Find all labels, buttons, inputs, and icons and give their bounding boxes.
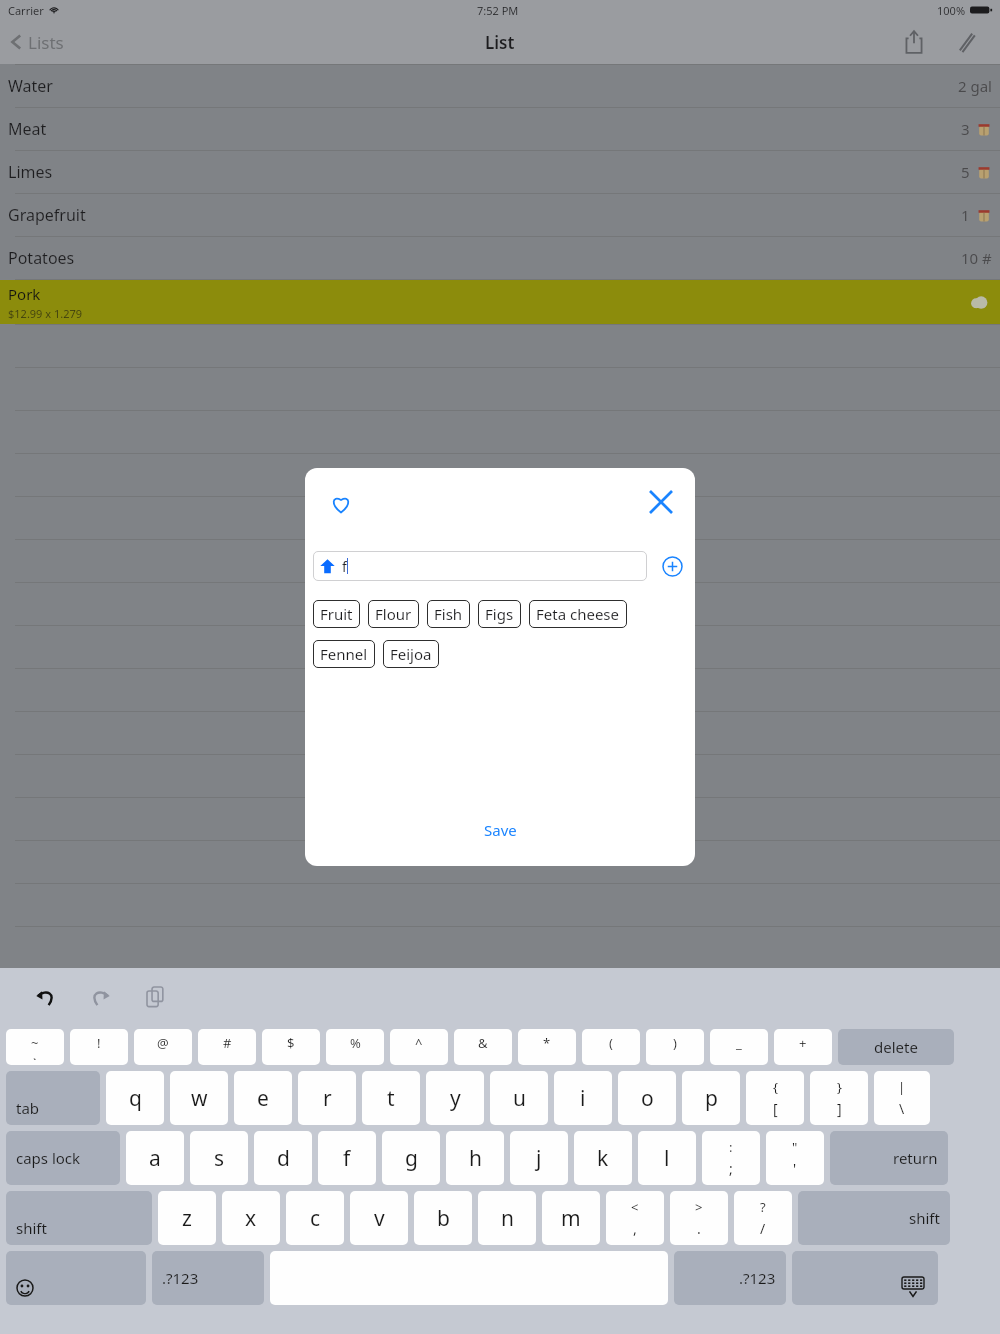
button[interactable]: Hide keyboard [792,1251,938,1305]
button[interactable]: Fish [434,600,463,628]
button[interactable]: f [320,551,647,581]
button[interactable]: ! [70,1029,128,1065]
button[interactable]: k [574,1131,632,1185]
button[interactable]: f [318,1131,376,1185]
button[interactable]: @ [134,1029,192,1065]
button[interactable]: Undo [24,975,68,1019]
button[interactable]: Edit [946,22,986,62]
button[interactable]: < [606,1191,664,1245]
button[interactable]: p [682,1071,740,1125]
staticText: r [323,1084,332,1113]
button[interactable]: w [170,1071,228,1125]
button[interactable]: r [298,1071,356,1125]
button[interactable]: y [426,1071,484,1125]
button[interactable]: n [478,1191,536,1245]
staticText: ^ [415,1034,423,1052]
button[interactable]: Feijoa [390,640,432,668]
button[interactable]: Lists [10,20,64,64]
button[interactable]: g [382,1131,440,1185]
button[interactable]: Close [639,480,683,524]
button[interactable]: & [454,1029,512,1065]
button[interactable]: Potatoes [8,237,992,279]
staticText: 2 gal [958,76,992,96]
button[interactable]: tab [6,1071,100,1125]
staticText: shift [16,1218,47,1238]
button[interactable]: Feta cheese [536,600,620,628]
button[interactable]: q [106,1071,164,1125]
button[interactable]: Fennel [320,640,368,668]
button[interactable]: shift [798,1191,950,1245]
button[interactable]: v [350,1191,408,1245]
staticText: h [469,1144,482,1173]
button[interactable]: h [446,1131,504,1185]
button[interactable]: ^ [390,1029,448,1065]
staticText: & [478,1034,488,1052]
button[interactable]: Water [8,65,992,107]
button[interactable]: Add [657,551,687,581]
button[interactable]: z [158,1191,216,1245]
button[interactable]: return [830,1131,948,1185]
button[interactable]: e [234,1071,292,1125]
button[interactable]: j [510,1131,568,1185]
button[interactable]: shift [6,1191,152,1245]
staticText: Fennel [320,644,368,664]
button[interactable]: c [286,1191,344,1245]
button[interactable]: Favorite [321,484,361,524]
button[interactable]: t [362,1071,420,1125]
button[interactable]: + [774,1029,832,1065]
button[interactable]: Paste [134,975,178,1019]
button[interactable]: i [554,1071,612,1125]
button[interactable]: .?123 [152,1251,264,1305]
button[interactable]: $ [262,1029,320,1065]
button[interactable]: b [414,1191,472,1245]
button[interactable]: s [190,1131,248,1185]
button[interactable]: Emoji [6,1251,146,1305]
button[interactable]: ( [582,1029,640,1065]
button[interactable]: l [638,1131,696,1185]
staticText: ! [97,1034,101,1052]
staticText: f [343,1144,351,1173]
button[interactable]: Limes [8,151,992,193]
staticText: b [437,1204,450,1233]
button[interactable]: ~ [6,1029,64,1065]
button[interactable]: Figs [485,600,514,628]
staticText: | [898,1078,906,1096]
button[interactable]: ? [734,1191,792,1245]
button[interactable]: " [766,1131,824,1185]
button[interactable]: u [490,1071,548,1125]
button[interactable]: | [874,1071,930,1125]
button[interactable]: .?123 [674,1251,786,1305]
button[interactable]: delete [838,1029,954,1065]
button[interactable]: Pork [0,280,1000,324]
button[interactable]: Grapefruit [8,194,992,236]
button[interactable]: Share [894,22,934,62]
button[interactable]: a [126,1131,184,1185]
button[interactable]: } [810,1071,868,1125]
button[interactable]: * [518,1029,576,1065]
button[interactable]: o [618,1071,676,1125]
staticText: Water [8,75,53,97]
staticText: t [387,1084,395,1113]
button[interactable]: Flour [375,600,412,628]
button[interactable]: > [670,1191,728,1245]
button[interactable]: # [198,1029,256,1065]
button[interactable]: ) [646,1029,704,1065]
button[interactable]: m [542,1191,600,1245]
button[interactable]: d [254,1131,312,1185]
button[interactable]: Meat [8,108,992,150]
button[interactable]: Redo [78,975,122,1019]
button[interactable]: _ [710,1029,768,1065]
button[interactable]: Save [484,820,517,840]
button[interactable]: Fruit [320,600,353,628]
staticText: # [223,1034,232,1052]
button[interactable]: caps lock [6,1131,120,1185]
button[interactable]: x [222,1191,280,1245]
button[interactable]: { [746,1071,804,1125]
button[interactable]: : [702,1131,760,1185]
button[interactable]: % [326,1029,384,1065]
